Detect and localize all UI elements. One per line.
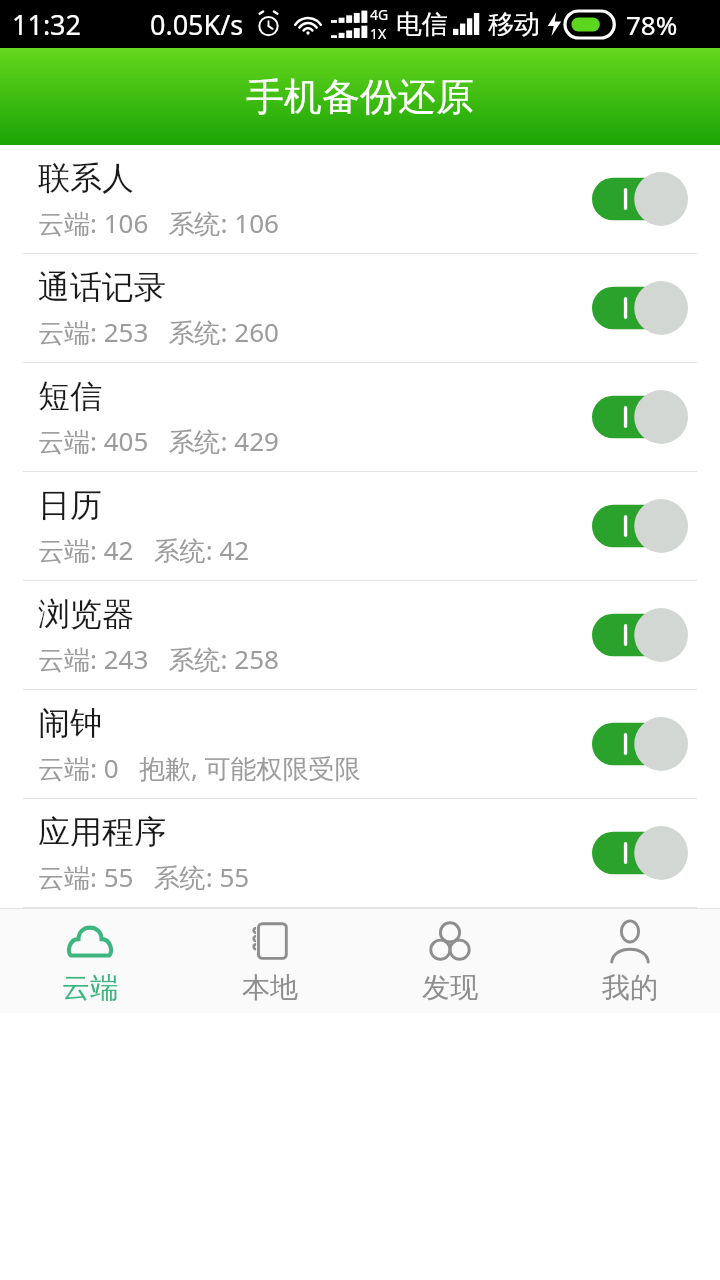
- button[interactable]: Toggle: [592, 280, 688, 336]
- staticText: 联系人: [38, 158, 134, 198]
- button[interactable]: Toggle: [592, 716, 688, 772]
- staticText: 本地: [242, 970, 298, 1005]
- staticText: 闹钟: [38, 703, 102, 743]
- button[interactable]: Toggle: [592, 498, 688, 554]
- button[interactable]: Toggle: [592, 825, 688, 881]
- staticText: 手机备份还原: [246, 73, 474, 121]
- staticText: 11:32: [12, 6, 82, 43]
- staticText: 通话记录: [38, 267, 166, 307]
- button[interactable]: 浏览器: [0, 581, 720, 689]
- button[interactable]: Toggle: [592, 389, 688, 445]
- staticText: 电信: [396, 8, 448, 41]
- staticText: 云端: 243 系统: 258: [38, 641, 279, 677]
- staticText: 云端: 405 系统: 429: [38, 423, 279, 459]
- staticText: 云端: 42 系统: 42: [38, 532, 250, 568]
- staticText: 移动: [488, 8, 540, 41]
- staticText: 云端: 0 抱歉, 可能权限受限: [38, 750, 361, 786]
- button[interactable]: 应用程序: [0, 799, 720, 907]
- staticText: 浏览器: [38, 594, 134, 634]
- staticText: 1X: [370, 24, 387, 43]
- staticText: 短信: [38, 376, 102, 416]
- button[interactable]: 日历: [0, 472, 720, 580]
- staticText: 我的: [602, 970, 658, 1005]
- button[interactable]: 发现: [360, 909, 540, 1013]
- staticText: 云端: 106 系统: 106: [38, 205, 279, 241]
- staticText: 云端: 55 系统: 55: [38, 859, 250, 895]
- button[interactable]: 联系人: [0, 145, 720, 253]
- staticText: 发现: [422, 970, 478, 1005]
- staticText: 0.05K/s: [150, 6, 244, 43]
- button[interactable]: 通话记录: [0, 254, 720, 362]
- button[interactable]: 我的: [540, 909, 720, 1013]
- staticText: 云端: 253 系统: 260: [38, 314, 279, 350]
- staticText: 4G: [370, 5, 389, 24]
- button[interactable]: 本地: [180, 909, 360, 1013]
- button[interactable]: 云端: [0, 909, 180, 1013]
- staticText: 云端: [62, 970, 118, 1005]
- button[interactable]: 闹钟: [0, 690, 720, 798]
- staticText: 78%: [626, 7, 678, 42]
- button[interactable]: Toggle: [592, 171, 688, 227]
- staticText: 应用程序: [38, 812, 166, 852]
- button[interactable]: Toggle: [592, 607, 688, 663]
- staticText: 日历: [38, 485, 102, 525]
- button[interactable]: 短信: [0, 363, 720, 471]
